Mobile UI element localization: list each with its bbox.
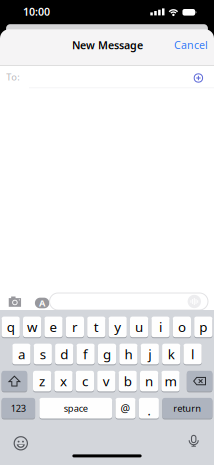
staticText: s xyxy=(40,345,46,363)
staticText: 10:00 xyxy=(23,4,50,19)
staticText: a xyxy=(18,345,25,363)
staticText: y xyxy=(114,318,121,336)
staticText: To: xyxy=(6,71,20,83)
staticText: z xyxy=(39,372,45,390)
button[interactable]: n xyxy=(140,370,158,392)
staticText: @ xyxy=(120,401,130,415)
button[interactable]: a xyxy=(12,343,30,365)
staticText: m xyxy=(164,372,176,390)
staticText: . xyxy=(147,403,150,419)
staticText: w xyxy=(27,318,37,336)
button[interactable]: z xyxy=(33,370,51,392)
staticText: space xyxy=(64,402,88,414)
button[interactable]: r xyxy=(66,316,84,338)
button[interactable]: A xyxy=(35,297,49,309)
staticText: c xyxy=(82,372,88,390)
button[interactable]: @ xyxy=(115,397,135,419)
button[interactable]: u xyxy=(130,316,148,338)
staticText: l xyxy=(191,345,194,363)
staticText: h xyxy=(124,345,132,363)
button[interactable]: g xyxy=(98,343,116,365)
staticText: Cancel xyxy=(174,38,208,52)
staticText: f xyxy=(83,345,88,363)
staticText: v xyxy=(103,372,110,390)
button[interactable]: v xyxy=(97,370,115,392)
button[interactable]: m xyxy=(161,370,180,392)
button[interactable]: t xyxy=(87,316,105,338)
button[interactable]: f xyxy=(76,343,95,365)
button[interactable]: return xyxy=(162,397,212,419)
button[interactable]: e xyxy=(44,316,63,338)
button[interactable] xyxy=(192,72,204,84)
button[interactable] xyxy=(188,295,201,308)
button[interactable]: h xyxy=(119,343,137,365)
staticText: n xyxy=(145,372,153,390)
staticText: 123 xyxy=(11,402,26,414)
button[interactable]: 123 xyxy=(2,397,35,419)
button[interactable] xyxy=(2,370,27,392)
button[interactable]: s xyxy=(34,343,52,365)
staticText: d xyxy=(60,345,68,363)
staticText: j xyxy=(148,345,151,363)
button[interactable]: y xyxy=(109,316,127,338)
staticText: g xyxy=(103,345,111,363)
button[interactable] xyxy=(49,293,208,310)
button[interactable]: l xyxy=(183,343,202,365)
button[interactable]: w xyxy=(23,316,41,338)
button[interactable] xyxy=(187,370,212,392)
button[interactable]: d xyxy=(55,343,73,365)
staticText: t xyxy=(94,318,99,336)
staticText: p xyxy=(199,318,207,336)
button[interactable] xyxy=(13,436,28,451)
button[interactable] xyxy=(7,295,23,309)
staticText: A xyxy=(39,297,45,309)
button[interactable] xyxy=(188,435,200,448)
staticText: r xyxy=(72,318,78,336)
staticText: x xyxy=(60,372,67,390)
button[interactable]: p xyxy=(194,316,212,338)
staticText: o xyxy=(178,318,186,336)
button[interactable]: i xyxy=(151,316,170,338)
button[interactable]: o xyxy=(173,316,191,338)
staticText: k xyxy=(168,345,175,363)
button[interactable]: b xyxy=(119,370,137,392)
staticText: return xyxy=(173,402,201,414)
button[interactable] xyxy=(0,66,214,88)
button[interactable]: q xyxy=(2,316,20,338)
button[interactable]: . xyxy=(139,397,159,419)
button[interactable]: x xyxy=(54,370,73,392)
button[interactable]: k xyxy=(162,343,180,365)
button[interactable]: j xyxy=(141,343,159,365)
staticText: i xyxy=(159,318,162,336)
staticText: New Message xyxy=(72,38,143,52)
staticText: b xyxy=(124,372,132,390)
staticText: q xyxy=(7,318,15,336)
staticText: u xyxy=(135,318,143,336)
staticText: e xyxy=(49,318,57,336)
button[interactable]: c xyxy=(76,370,94,392)
button[interactable]: Cancel xyxy=(174,38,208,52)
button[interactable]: space xyxy=(39,397,112,419)
